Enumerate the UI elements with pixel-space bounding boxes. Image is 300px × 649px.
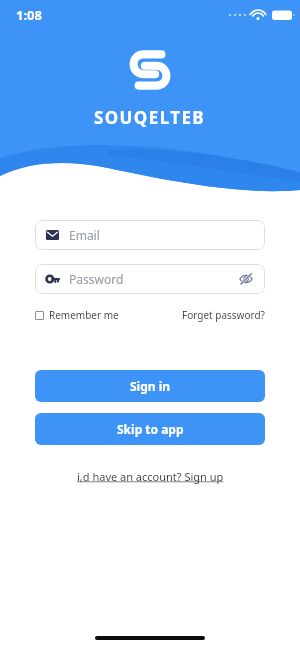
staticText: Forget password? [182,308,265,322]
staticText: Password [69,271,124,287]
staticText: Email [69,227,100,243]
button[interactable]: Password [35,264,265,294]
staticText: 1:08 [16,6,42,24]
button[interactable]: i,d have an account? Sign up [73,465,228,488]
button[interactable]: Sign in [35,370,265,402]
button[interactable]: Email [35,220,265,250]
button[interactable]: Forget password? [182,308,265,322]
staticText: Sign in [130,378,171,394]
button[interactable]: Skip to app [35,413,265,445]
staticText: Skip to app [117,421,184,437]
button[interactable]: Remember me [35,308,119,322]
button[interactable]: Show password [236,269,256,289]
staticText: i,d have an account? Sign up [77,469,224,484]
staticText: Remember me [49,308,119,322]
staticText: SOUQELTEB [94,106,206,129]
